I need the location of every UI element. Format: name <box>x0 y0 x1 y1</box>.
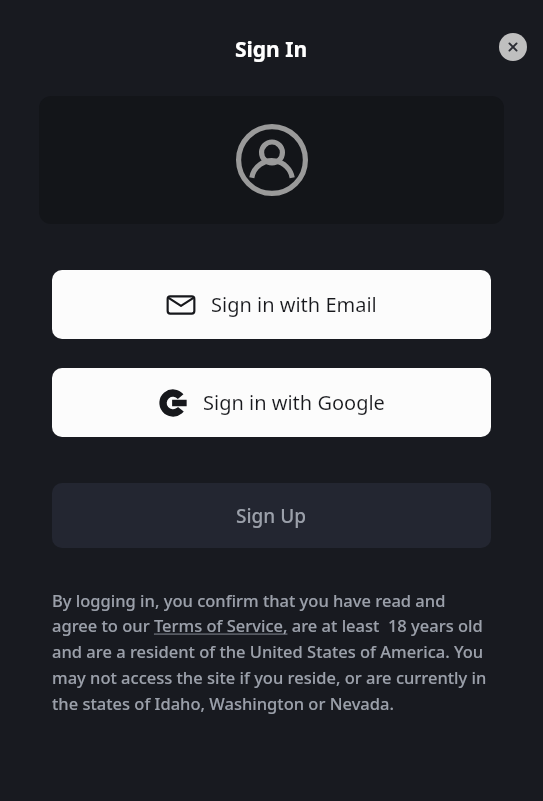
staticText: Sign Up <box>236 503 307 529</box>
button[interactable]: Sign Up <box>52 483 491 548</box>
staticText: Sign In <box>235 35 308 64</box>
staticText: Sign in with Google <box>203 389 385 416</box>
button[interactable]: Sign in with Google <box>52 368 491 437</box>
button[interactable]: Sign in with Email <box>52 270 491 339</box>
staticText: Sign in with Email <box>211 291 377 318</box>
staticText: By logging in, you confirm that you have… <box>52 589 491 715</box>
button[interactable]: Close <box>499 33 527 61</box>
